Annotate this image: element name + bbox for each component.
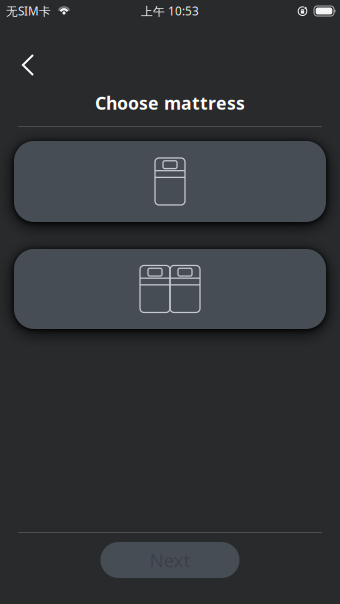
button[interactable] [0, 141, 340, 222]
staticText: 无SIM卡 [6, 3, 51, 19]
staticText: 上午 10:53 [141, 3, 199, 19]
staticText: Choose mattress [95, 91, 245, 115]
button[interactable]: Back [12, 46, 44, 84]
staticText: Next [149, 547, 190, 573]
button[interactable] [0, 249, 340, 329]
button[interactable]: Next [100, 542, 239, 578]
